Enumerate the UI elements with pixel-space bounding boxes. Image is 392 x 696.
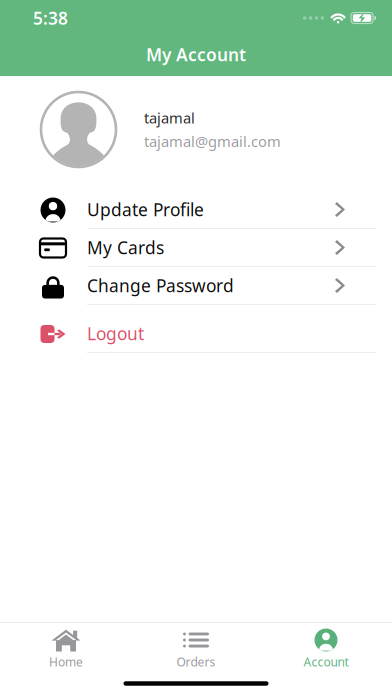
staticText: Account	[303, 654, 348, 670]
staticText: Update Profile	[87, 198, 204, 221]
staticText: 5:38	[33, 6, 68, 29]
staticText: Orders	[176, 654, 215, 670]
staticText: tajamal@gmail.com	[144, 131, 281, 151]
staticText: My Account	[146, 43, 246, 66]
button[interactable]: Home	[1, 623, 131, 671]
button[interactable]: My Cards	[0, 229, 392, 267]
button[interactable]: Logout	[0, 315, 392, 353]
button[interactable]: Orders	[131, 623, 261, 671]
staticText: My Cards	[87, 236, 164, 259]
staticText: Change Password	[87, 274, 234, 297]
button[interactable]: Account	[261, 623, 391, 671]
button[interactable]: Update Profile	[0, 191, 392, 229]
staticText: Logout	[87, 322, 144, 345]
staticText: Home	[49, 654, 83, 670]
button[interactable]: Change Password	[0, 267, 392, 305]
staticText: tajamal	[144, 108, 195, 127]
